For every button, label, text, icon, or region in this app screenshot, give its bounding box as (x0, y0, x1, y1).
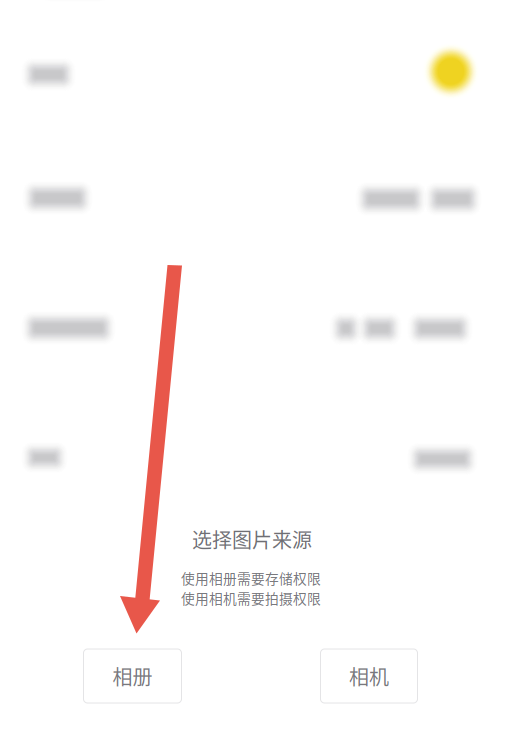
button[interactable]: 相册 (83, 649, 181, 703)
button[interactable]: 相机 (320, 649, 417, 703)
staticText: 选择图片来源 (192, 524, 312, 553)
button[interactable]: 账号信息 (0, 83, 524, 146)
staticText: 使用相册需要存储权限 (181, 568, 321, 588)
button[interactable]: 更多 (0, 213, 524, 276)
staticText: 相册 (112, 661, 152, 690)
button[interactable]: 头像 (0, 21, 524, 84)
staticText: 相机 (349, 661, 389, 690)
button[interactable]: 个人资料 (0, 148, 524, 211)
staticText: 使用相机需要拍摄权限 (181, 588, 321, 608)
